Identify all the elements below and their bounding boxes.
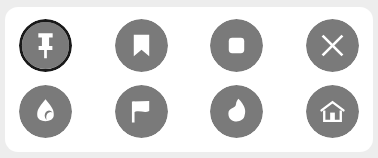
- button[interactable]: Pin: [19, 19, 72, 72]
- button[interactable]: Close: [306, 19, 359, 72]
- button[interactable]: Home: [306, 85, 359, 138]
- button[interactable]: Flame: [210, 85, 263, 138]
- button[interactable]: Water drop: [19, 85, 72, 138]
- button[interactable]: Bookmark: [115, 19, 168, 72]
- button[interactable]: Stop: [210, 19, 263, 72]
- button[interactable]: Flag: [115, 85, 168, 138]
